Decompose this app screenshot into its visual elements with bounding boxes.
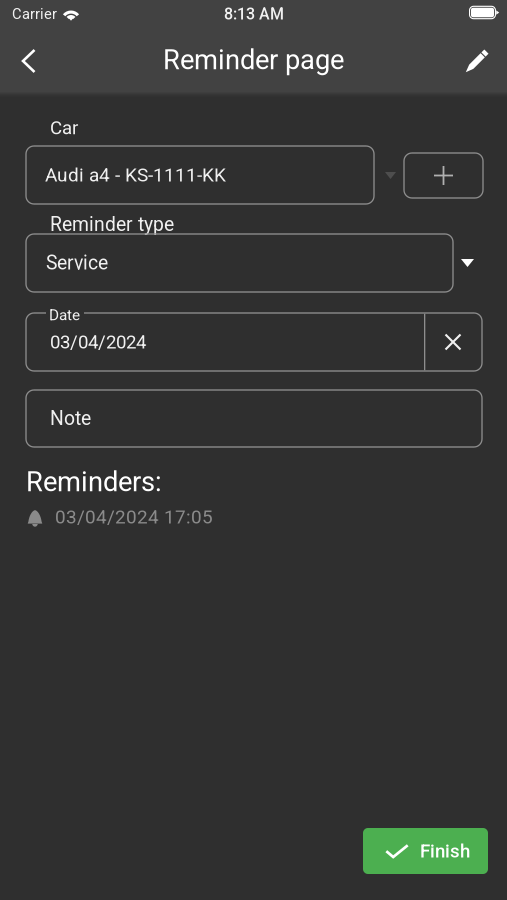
staticText: Finish (420, 840, 470, 862)
staticText: 03/04/2024 17:05 (55, 506, 213, 528)
button[interactable]: Add car (0, 0, 507, 900)
staticText: Carrier (12, 5, 57, 23)
staticText: Note (50, 407, 91, 430)
button[interactable]: Edit (0, 0, 507, 900)
staticText: Service (46, 252, 108, 274)
button[interactable]: Finish (0, 0, 507, 900)
staticText: Reminder page (163, 44, 344, 76)
button[interactable]: 03/04/2024 (0, 0, 507, 900)
button[interactable]: Back (0, 0, 507, 900)
staticText: Reminder type (50, 213, 174, 232)
staticText: Car (50, 117, 78, 136)
button[interactable]: Clear date (0, 0, 507, 900)
staticText: Date (49, 306, 80, 322)
button[interactable]: Note (0, 0, 507, 900)
staticText: Reminders: (26, 466, 162, 496)
staticText: 8:13 AM (224, 5, 284, 23)
button[interactable]: Service (0, 0, 507, 900)
staticText: 03/04/2024 (50, 331, 146, 353)
staticText: Audi a4 - KS-1111-KK (45, 164, 226, 186)
button[interactable]: Audi a4 - KS-1111-KK (0, 0, 507, 900)
